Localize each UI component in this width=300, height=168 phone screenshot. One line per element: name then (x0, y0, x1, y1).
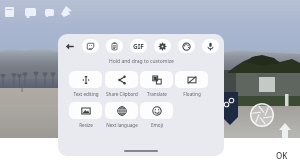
button[interactable]: Stickers (82, 39, 99, 53)
button[interactable]: Floating (175, 71, 208, 97)
button[interactable]: Voice input (202, 39, 219, 53)
staticText: Hold and drag to customize (109, 58, 174, 65)
button[interactable]: Translate (140, 71, 173, 97)
staticText: Resize (79, 122, 93, 128)
staticText: Emoji (151, 122, 163, 128)
button[interactable]: Back (61, 39, 78, 53)
staticText: Translate (147, 91, 167, 97)
button[interactable]: OK (276, 150, 288, 161)
button[interactable]: Clipboard (106, 39, 123, 53)
staticText: Share Clipbord (106, 91, 138, 97)
button[interactable]: Share Clipbord (105, 71, 138, 97)
staticText: GIF (133, 42, 144, 51)
button[interactable]: Next language (105, 102, 138, 128)
staticText: Floating (183, 91, 201, 97)
staticText: OK (276, 150, 288, 161)
staticText: Text editing (73, 91, 99, 97)
button[interactable]: Resize (69, 102, 102, 128)
button[interactable]: Emoji (140, 102, 173, 128)
button[interactable]: Settings (154, 39, 171, 53)
button[interactable]: Theme (178, 39, 195, 53)
button[interactable]: GIF (130, 39, 147, 53)
button[interactable]: Text editing (69, 71, 102, 97)
staticText: Next language (106, 122, 138, 128)
